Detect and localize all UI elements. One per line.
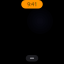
- staticText: 9:41: [27, 1, 37, 8]
- button[interactable]: Stop: [26, 55, 38, 61]
- button[interactable]: 9:41: [21, 0, 43, 8]
